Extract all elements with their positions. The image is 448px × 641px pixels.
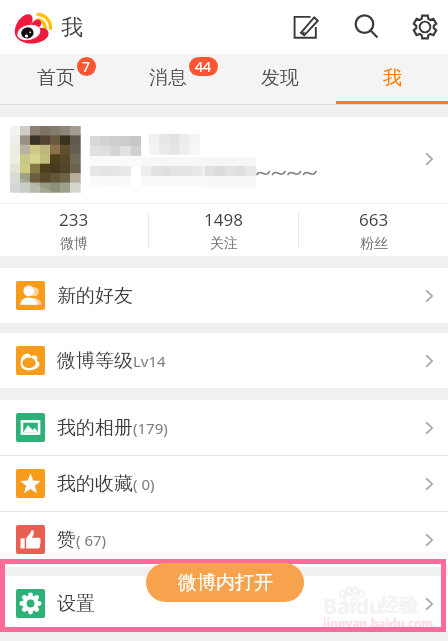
button[interactable]: Settings [407, 9, 443, 45]
staticText: 我的相册 [57, 416, 133, 440]
staticText: ( 67) [76, 530, 107, 550]
button[interactable]: 我 [336, 54, 448, 101]
button[interactable]: Compose post [289, 9, 325, 45]
button[interactable]: 微博内打开 [146, 563, 304, 602]
staticText: 赞 [57, 528, 76, 552]
staticText: 粉丝 [360, 235, 388, 253]
staticText: 44 [195, 57, 212, 76]
button[interactable]: 233 [0, 204, 148, 256]
button[interactable]: 微博等级 [0, 333, 448, 388]
staticText: 7 [82, 57, 91, 76]
button[interactable]: 1498 [149, 204, 298, 256]
button[interactable]: 我的收藏 [0, 456, 448, 511]
staticText: (179) [133, 418, 168, 438]
staticText: 233 [59, 208, 89, 231]
staticText: 我 [383, 66, 402, 90]
staticText: 我 [61, 14, 83, 42]
staticText: ( 0) [133, 474, 155, 494]
staticText: 发现 [261, 66, 299, 90]
staticText: 微博内打开 [178, 571, 273, 595]
staticText: 首页 [37, 66, 75, 90]
staticText: 新的好友 [57, 284, 133, 308]
button[interactable]: 发现 [224, 54, 336, 101]
button[interactable]: Search [349, 9, 385, 45]
staticText: 微博 [60, 235, 88, 253]
staticText: 1498 [204, 208, 243, 231]
button[interactable]: 首页 [0, 54, 112, 101]
button[interactable]: 消息 [112, 54, 224, 101]
staticText: Baidu [323, 592, 383, 621]
button[interactable] [0, 117, 448, 204]
staticText: 我的收藏 [57, 472, 133, 496]
button[interactable]: 新的好友 [0, 268, 448, 323]
button[interactable]: 赞 [0, 512, 448, 567]
staticText: 663 [359, 208, 389, 231]
staticText: 消息 [149, 66, 187, 90]
button[interactable]: 我的相册 [0, 400, 448, 455]
staticText: Lv14 [133, 351, 166, 371]
staticText: 关注 [210, 235, 238, 253]
staticText: 设置 [57, 592, 95, 616]
button[interactable]: 663 [299, 204, 448, 256]
staticText: 微博等级 [57, 349, 133, 373]
staticText: jingyan.baidu.com [323, 615, 434, 631]
staticText: 经验 [380, 594, 418, 618]
button[interactable]: 设置 [0, 576, 448, 631]
